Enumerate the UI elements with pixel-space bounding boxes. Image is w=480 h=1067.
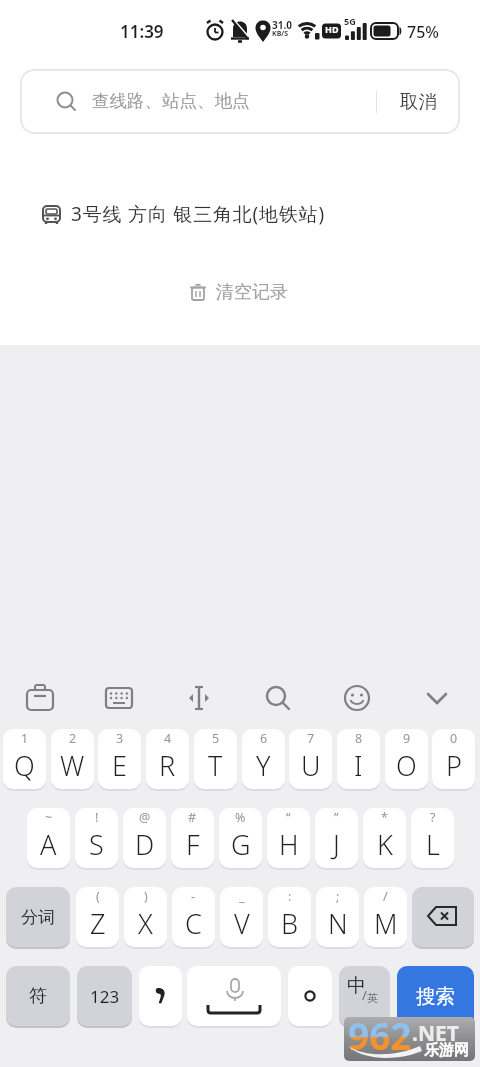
staticText: 8 [355,730,363,747]
button[interactable]: 123 [77,966,132,1026]
staticText: 75% [407,21,439,43]
staticText: _ [239,888,245,905]
button[interactable] [185,684,213,712]
staticText: 清空记录 [216,281,288,304]
staticText: Y [256,747,271,784]
button[interactable]: ) [124,887,167,947]
staticText: V [234,905,250,942]
staticText: KB/S [272,29,289,39]
staticText: 7 [307,730,315,747]
button[interactable]: 3 [98,729,141,789]
staticText: 分词 [21,907,55,928]
button[interactable] [343,684,371,712]
staticText: A [40,826,57,863]
button[interactable]: 分词 [6,887,70,947]
staticText: 取消 [400,90,437,113]
staticText: 2 [69,730,77,747]
button[interactable]: 3号线 方向 银三角北(地铁站) [24,192,456,236]
staticText: / [383,888,388,905]
button[interactable]: / [364,887,407,947]
staticText: 5G [344,15,356,27]
button[interactable]: 5 [194,729,237,789]
staticText: 乐游网 [424,1041,469,1060]
staticText: S [89,826,104,863]
button[interactable]: 0 [432,729,475,789]
button[interactable] [139,966,182,1026]
staticText: 1 [21,730,29,747]
staticText: 5 [212,730,220,747]
staticText: “ [286,809,291,826]
staticText: 中 [347,974,366,998]
button[interactable]: 取消 [388,69,448,134]
button[interactable] [105,684,133,712]
staticText: ; [336,888,340,905]
staticText: ) [144,888,148,905]
staticText: ~ [45,809,53,826]
button[interactable]: 1 [3,729,46,789]
button[interactable] [264,684,292,712]
staticText: 11:39 [120,20,164,43]
button[interactable]: : [268,887,311,947]
staticText: ” [334,809,339,826]
button[interactable]: 符 [6,966,70,1026]
staticText: # [188,809,197,826]
staticText: @ [139,809,151,826]
staticText: 31.0 [272,18,292,32]
button[interactable] [412,887,474,947]
staticText: 3号线 方向 银三角北(地铁站) [71,201,325,227]
button[interactable] [288,966,332,1026]
button[interactable]: ” [315,808,358,868]
button[interactable]: - [172,887,215,947]
staticText: P [446,747,462,784]
button[interactable]: 搜索 [397,966,474,1026]
button[interactable]: 6 [242,729,285,789]
staticText: ? [430,809,436,826]
staticText: T [208,747,223,784]
staticText: 123 [90,985,120,1008]
button[interactable]: # [171,808,214,868]
button[interactable] [26,684,54,712]
button[interactable] [187,966,281,1026]
button[interactable]: ~ [27,808,70,868]
button[interactable]: ! [75,808,118,868]
staticText: I [354,747,363,784]
button[interactable]: * [363,808,406,868]
staticText: ! [95,809,99,826]
button[interactable]: 中 [339,966,390,1026]
button[interactable]: 查线路、站点、地点 [20,69,460,134]
button[interactable]: _ [220,887,263,947]
staticText: .NET [412,1019,459,1048]
staticText: 3 [116,730,124,747]
button[interactable]: @ [123,808,166,868]
staticText: Q [14,747,35,784]
staticText: H [279,826,299,863]
button[interactable]: 8 [337,729,380,789]
button[interactable]: 9 [385,729,428,789]
staticText: M [374,905,398,942]
staticText: O [396,747,417,784]
button[interactable]: “ [267,808,310,868]
button[interactable]: 4 [146,729,189,789]
staticText: E [112,747,127,784]
staticText: 英 [367,991,378,1005]
staticText: 4 [164,730,172,747]
button[interactable]: ( [76,887,119,947]
button[interactable]: 7 [289,729,332,789]
staticText: J [333,826,340,863]
button[interactable]: ; [316,887,359,947]
staticText: U [301,747,321,784]
staticText: C [185,905,202,942]
button[interactable] [423,684,451,712]
button[interactable]: 清空记录 [190,273,310,311]
staticText: K [377,826,393,863]
button[interactable]: ? [411,808,454,868]
staticText: 查线路、站点、地点 [92,90,250,112]
staticText: Z [90,905,106,942]
staticText: N [328,905,348,942]
staticText: 962 [348,1010,412,1054]
staticText: HD [325,23,339,35]
button[interactable]: % [219,808,262,868]
staticText: * [381,809,388,826]
staticText: 0 [450,730,458,747]
button[interactable]: 2 [51,729,94,789]
